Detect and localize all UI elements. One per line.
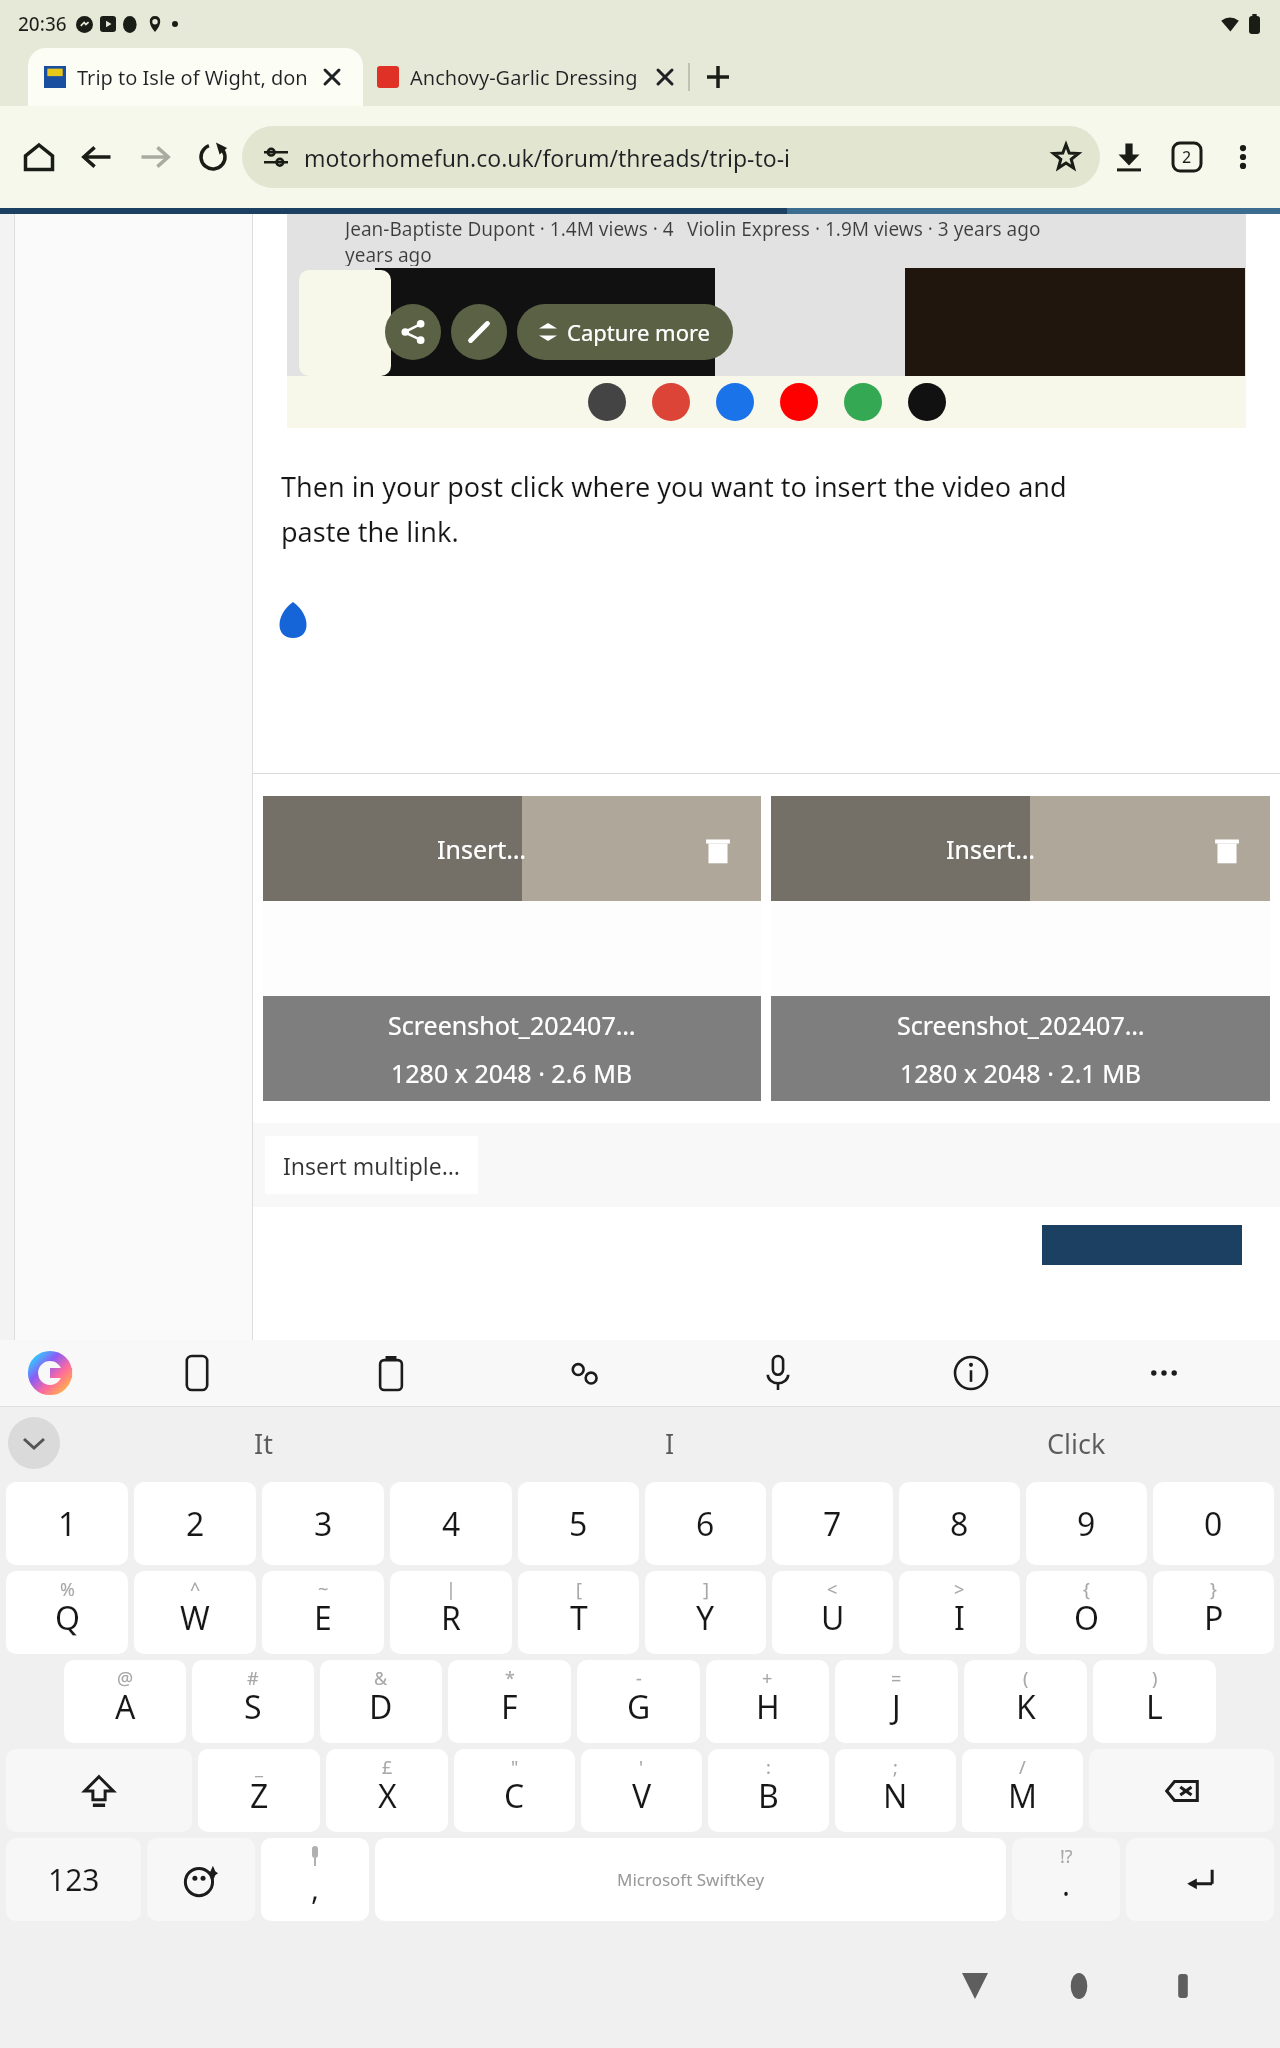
button[interactable]: ( xyxy=(964,1660,1087,1743)
button[interactable]: Home xyxy=(1056,1963,1102,2009)
button[interactable]: { xyxy=(1026,1571,1147,1654)
button[interactable]: 4 xyxy=(390,1482,512,1565)
button[interactable]: motorhomefun.co.uk/forum/threads/trip-to… xyxy=(242,126,1100,188)
button[interactable]: Close tab xyxy=(650,62,680,92)
button[interactable]: 5 xyxy=(518,1482,639,1565)
button[interactable]: Back xyxy=(952,1963,998,2009)
button[interactable]: ) xyxy=(1093,1660,1216,1743)
button[interactable]: 2 xyxy=(134,1482,256,1565)
button[interactable]: It xyxy=(60,1407,466,1479)
button[interactable]: Insert… xyxy=(263,796,761,1101)
button[interactable]: Download xyxy=(1100,128,1158,186)
button[interactable]: I xyxy=(466,1407,873,1479)
button[interactable]: Trip to Isle of Wight, don xyxy=(28,48,363,106)
staticText: U xyxy=(821,1596,845,1640)
staticText: _ xyxy=(255,1755,263,1780)
staticText: , xyxy=(311,1868,320,1909)
button[interactable]: Anchovy-Garlic Dressing xyxy=(363,48,688,106)
button[interactable]: Collapse xyxy=(8,1417,60,1469)
button[interactable]: Recents xyxy=(1160,1963,1206,2009)
button[interactable]: # xyxy=(192,1660,314,1743)
staticText: < xyxy=(827,1577,838,1602)
button[interactable]: | xyxy=(390,1571,512,1654)
button[interactable]: ^ xyxy=(134,1571,256,1654)
button[interactable]: 0 xyxy=(1153,1482,1274,1565)
button[interactable]: TRANS xyxy=(488,1340,681,1406)
button[interactable]: More options xyxy=(1216,130,1270,184)
button[interactable]: INFO xyxy=(874,1340,1067,1406)
button[interactable]: Shift xyxy=(6,1749,192,1832)
button[interactable]: Space xyxy=(375,1838,1006,1921)
button[interactable]: Tabs xyxy=(1158,128,1216,186)
button[interactable]: " xyxy=(454,1749,575,1832)
button[interactable]: 8 xyxy=(899,1482,1020,1565)
button[interactable]: Emoji xyxy=(147,1838,255,1921)
staticText: A xyxy=(115,1685,136,1729)
staticText: 2 xyxy=(186,1502,205,1546)
button[interactable]: , xyxy=(261,1838,369,1921)
button[interactable]: Edit xyxy=(451,304,507,360)
button[interactable]: ~ xyxy=(262,1571,384,1654)
button[interactable]: @ xyxy=(64,1660,186,1743)
staticText: I xyxy=(954,1596,965,1640)
staticText: I xyxy=(665,1425,675,1462)
button[interactable]: % xyxy=(6,1571,128,1654)
button[interactable]: 6 xyxy=(645,1482,766,1565)
button[interactable]: MIC xyxy=(681,1340,874,1406)
button[interactable]: 7 xyxy=(772,1482,893,1565)
staticText: Click xyxy=(1047,1425,1106,1462)
button[interactable]: > xyxy=(899,1571,1020,1654)
staticText: & xyxy=(374,1666,388,1691)
button[interactable]: : xyxy=(708,1749,829,1832)
staticText: H xyxy=(756,1685,780,1729)
button[interactable]: GIF xyxy=(100,1340,294,1406)
button[interactable]: CLIP xyxy=(294,1340,488,1406)
staticText: Anchovy-Garlic Dressing xyxy=(410,64,638,91)
staticText: ' xyxy=(639,1755,644,1780)
button[interactable]: Click xyxy=(873,1407,1280,1479)
button[interactable]: ] xyxy=(645,1571,766,1654)
button[interactable]: / xyxy=(962,1749,1083,1832)
button[interactable]: + xyxy=(706,1660,829,1743)
button[interactable]: Bookmark xyxy=(1046,137,1086,177)
button[interactable]: Forward xyxy=(126,128,184,186)
button[interactable]: Back xyxy=(68,128,126,186)
button[interactable]: Insert multiple… xyxy=(265,1136,478,1194)
button[interactable]: !? xyxy=(1012,1838,1120,1921)
button[interactable]: < xyxy=(772,1571,893,1654)
button[interactable]: Copilot xyxy=(0,1340,100,1406)
staticText: J xyxy=(892,1685,901,1729)
button[interactable]: Close tab xyxy=(317,62,347,92)
button[interactable]: Share xyxy=(385,304,441,360)
button[interactable]: 3 xyxy=(262,1482,384,1565)
button[interactable]: ; xyxy=(835,1749,956,1832)
button[interactable]: Home xyxy=(10,128,68,186)
button[interactable]: Backspace xyxy=(1089,1749,1274,1832)
button[interactable]: Enter xyxy=(1126,1838,1274,1921)
button[interactable]: 123 xyxy=(6,1838,141,1921)
button[interactable]: Reload xyxy=(184,128,242,186)
button[interactable]: - xyxy=(577,1660,700,1743)
button[interactable]: ' xyxy=(581,1749,702,1832)
staticText: V xyxy=(632,1774,652,1818)
staticText: 4 xyxy=(442,1502,461,1546)
button[interactable]: _ xyxy=(198,1749,320,1832)
button[interactable]: [ xyxy=(518,1571,639,1654)
button[interactable]: = xyxy=(835,1660,958,1743)
staticText: Q xyxy=(55,1596,80,1640)
staticText: ^ xyxy=(190,1577,201,1602)
button[interactable]: Insert… xyxy=(771,796,1270,1101)
button[interactable]: * xyxy=(448,1660,571,1743)
staticText: Screenshot_202407… xyxy=(388,1008,636,1042)
button[interactable]: 1 xyxy=(6,1482,128,1565)
staticText: 8 xyxy=(950,1502,969,1546)
staticText: 20:36 xyxy=(18,11,67,37)
button[interactable]: Capture more xyxy=(517,304,733,360)
button[interactable]: & xyxy=(320,1660,442,1743)
staticText: @ xyxy=(117,1666,134,1691)
button[interactable]: £ xyxy=(326,1749,448,1832)
button[interactable]: } xyxy=(1153,1571,1274,1654)
button[interactable]: New tab xyxy=(690,49,746,105)
button[interactable]: MORE xyxy=(1067,1340,1260,1406)
button[interactable]: 9 xyxy=(1026,1482,1147,1565)
